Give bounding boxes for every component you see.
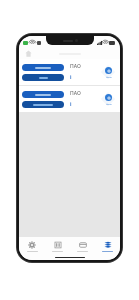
button[interactable]: Cards: [70, 237, 95, 255]
button[interactable]: Settings: [19, 237, 45, 255]
staticText: ПАО: [70, 90, 81, 97]
staticText: i: [70, 101, 72, 108]
button[interactable]: ПАО: [19, 59, 120, 85]
button[interactable]: ПАО: [19, 86, 120, 112]
button[interactable]: [22, 101, 64, 108]
button[interactable]: Services: [95, 237, 120, 255]
button[interactable]: Home: [24, 49, 33, 58]
button[interactable]: News: [45, 237, 70, 255]
staticText: ПАО: [70, 63, 81, 70]
button[interactable]: [22, 64, 64, 71]
button[interactable]: [22, 74, 64, 81]
staticText: i: [70, 74, 72, 81]
button[interactable]: Partner logo: [99, 63, 117, 81]
button[interactable]: [22, 91, 64, 98]
staticText: банк: [106, 102, 112, 105]
button[interactable]: Partner logo: [99, 90, 117, 108]
staticText: банк: [106, 75, 112, 78]
